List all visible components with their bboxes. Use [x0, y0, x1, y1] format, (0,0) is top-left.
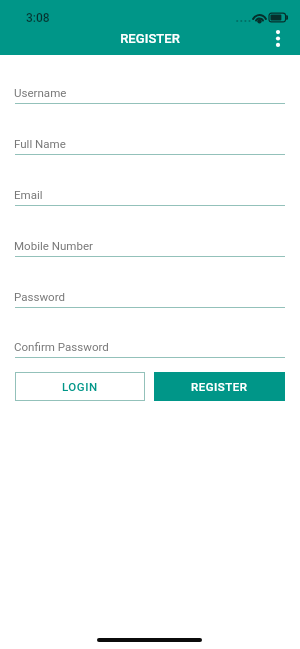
button[interactable]: LOGIN: [15, 372, 145, 401]
staticText: REGISTER: [0, 31, 300, 46]
staticText: Mobile Number: [14, 239, 94, 253]
button[interactable]: Username: [15, 67, 285, 104]
staticText: Email: [14, 188, 43, 202]
staticText: 3:08: [26, 11, 50, 25]
button[interactable]: REGISTER: [154, 372, 285, 401]
staticText: Full Name: [14, 137, 66, 151]
staticText: Password: [14, 290, 66, 304]
button[interactable]: More options: [265, 22, 290, 54]
button[interactable]: Password: [15, 271, 285, 308]
button[interactable]: Full Name: [15, 118, 285, 155]
staticText: REGISTER: [191, 380, 248, 393]
button[interactable]: Confirm Password: [15, 321, 285, 358]
button[interactable]: Email: [15, 169, 285, 206]
staticText: Username: [14, 86, 67, 100]
staticText: Confirm Password: [14, 340, 109, 354]
button[interactable]: Mobile Number: [15, 220, 285, 257]
staticText: LOGIN: [62, 380, 98, 393]
